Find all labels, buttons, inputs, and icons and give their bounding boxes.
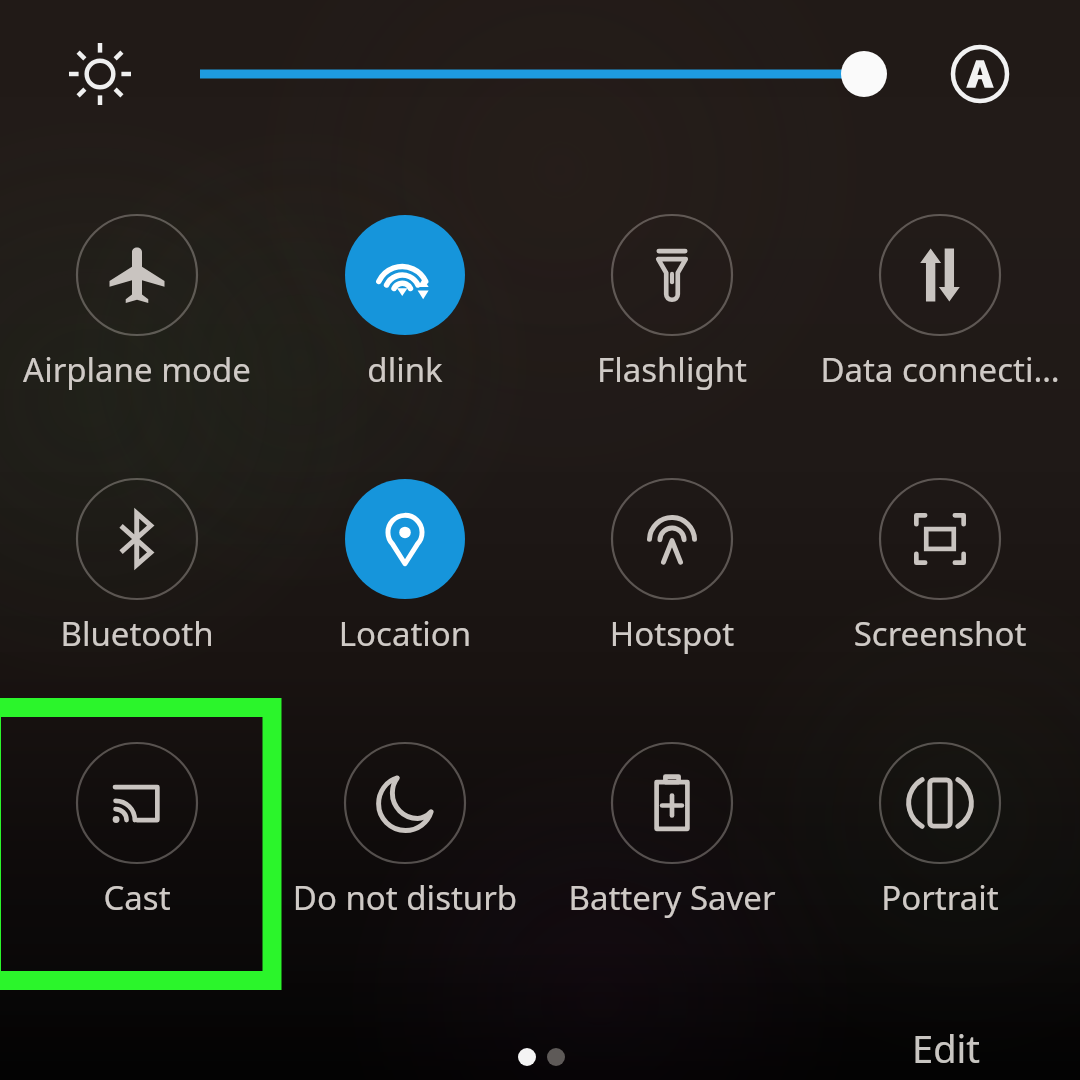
staticText: Edit: [912, 1022, 981, 1074]
staticText: Flashlight: [543, 347, 801, 392]
button[interactable]: Screenshot: [811, 455, 1069, 665]
staticText: Portrait: [811, 875, 1069, 920]
button[interactable]: Data connecti…: [811, 191, 1069, 401]
button[interactable]: Hotspot: [543, 455, 801, 665]
staticText: Location: [276, 611, 534, 656]
staticText: Cast: [8, 875, 266, 920]
button[interactable]: Cast: [8, 719, 266, 929]
staticText: Bluetooth: [8, 611, 266, 656]
staticText: dlink: [276, 347, 534, 392]
button[interactable]: Auto brightness: [946, 40, 1014, 108]
button[interactable]: Battery Saver: [543, 719, 801, 929]
button[interactable]: Brightness slider: [180, 44, 886, 104]
button[interactable]: Portrait: [811, 719, 1069, 929]
button[interactable]: dlink: [276, 191, 534, 401]
button[interactable]: Airplane mode: [8, 191, 266, 401]
button[interactable]: Do not disturb: [276, 719, 534, 929]
staticText: Airplane mode: [8, 347, 266, 392]
staticText: Data connecti…: [811, 347, 1069, 392]
staticText: Screenshot: [811, 611, 1069, 656]
staticText: Hotspot: [543, 611, 801, 656]
button[interactable]: Brightness: [66, 40, 134, 108]
staticText: Do not disturb: [276, 875, 534, 920]
button[interactable]: Edit: [880, 1018, 1040, 1080]
button[interactable]: Location: [276, 455, 534, 665]
button[interactable]: Page indicator: [500, 1034, 586, 1080]
button[interactable]: Flashlight: [543, 191, 801, 401]
button[interactable]: Bluetooth: [8, 455, 266, 665]
staticText: Battery Saver: [543, 875, 801, 920]
